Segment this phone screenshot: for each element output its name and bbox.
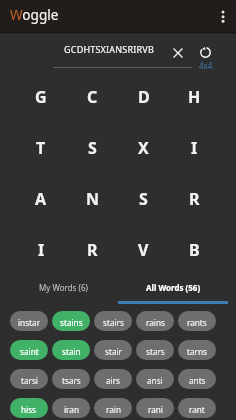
button[interactable]: Clear xyxy=(167,42,189,64)
button[interactable]: rants xyxy=(178,311,216,331)
button[interactable]: rani xyxy=(136,398,174,418)
button[interactable]: I xyxy=(169,122,220,173)
staticText: stain xyxy=(62,346,81,357)
button[interactable]: rains xyxy=(136,311,174,331)
staticText: rant xyxy=(189,404,205,415)
staticText: All Words (56) xyxy=(146,282,201,293)
button[interactable]: X xyxy=(118,122,169,173)
button[interactable]: stars xyxy=(136,340,174,360)
button[interactable]: D xyxy=(118,71,169,122)
staticText: instar xyxy=(18,317,41,328)
staticText: R xyxy=(189,188,200,210)
button[interactable]: instar xyxy=(10,311,48,331)
staticText: Woggle xyxy=(10,5,59,24)
staticText: S xyxy=(139,188,148,210)
button[interactable]: My Words (6) xyxy=(8,275,118,301)
staticText: 4x4 xyxy=(199,60,213,71)
button[interactable]: C xyxy=(67,71,118,122)
button[interactable]: R xyxy=(67,224,118,275)
button[interactable]: N xyxy=(67,173,118,224)
staticText: D xyxy=(138,86,150,108)
staticText: airs xyxy=(106,375,121,386)
button[interactable]: R xyxy=(169,173,220,224)
button[interactable]: stain xyxy=(52,340,90,360)
staticText: stairs xyxy=(103,317,124,328)
staticText: tarns xyxy=(187,346,207,357)
button[interactable]: stairs xyxy=(94,311,132,331)
button[interactable]: rain xyxy=(94,398,132,418)
staticText: rants xyxy=(187,317,207,328)
button[interactable]: ants xyxy=(178,369,216,389)
staticText: stair xyxy=(105,346,122,357)
button[interactable]: A xyxy=(15,173,67,224)
button[interactable]: More options xyxy=(208,1,236,31)
button[interactable]: saint xyxy=(10,340,48,360)
staticText: iran xyxy=(64,404,79,415)
staticText: G xyxy=(35,86,47,108)
staticText: B xyxy=(189,239,200,261)
button[interactable]: H xyxy=(169,71,220,122)
button[interactable]: hiss xyxy=(10,398,48,418)
staticText: I xyxy=(38,239,45,261)
staticText: R xyxy=(87,239,98,261)
staticText: hiss xyxy=(21,404,37,415)
staticText: tsars xyxy=(62,375,81,386)
button[interactable]: New board 4x4 xyxy=(193,42,218,74)
button[interactable]: tsars xyxy=(52,369,90,389)
button[interactable]: G xyxy=(15,71,67,122)
staticText: stains xyxy=(60,317,83,328)
staticText: S xyxy=(88,137,97,159)
button[interactable]: I xyxy=(15,224,67,275)
button[interactable]: tarsi xyxy=(10,369,48,389)
button[interactable]: All Words (56) xyxy=(118,275,228,304)
button[interactable]: S xyxy=(118,173,169,224)
button[interactable]: rant xyxy=(178,398,216,418)
staticText: saint xyxy=(20,346,39,357)
button[interactable]: stair xyxy=(94,340,132,360)
staticText: T xyxy=(36,137,46,159)
staticText: rain xyxy=(106,404,121,415)
staticText: H xyxy=(188,86,201,108)
button[interactable]: ansi xyxy=(136,369,174,389)
staticText: V xyxy=(138,239,149,261)
button[interactable]: T xyxy=(15,122,67,173)
staticText: rani xyxy=(148,404,163,415)
staticText: tarsi xyxy=(21,375,38,386)
staticText: A xyxy=(35,188,47,210)
staticText: C xyxy=(87,86,98,108)
staticText: X xyxy=(138,137,149,159)
staticText: GCDHTSXIANSRIRVB xyxy=(64,43,154,55)
button[interactable]: B xyxy=(169,224,220,275)
button[interactable]: S xyxy=(67,122,118,173)
staticText: ants xyxy=(189,375,206,386)
staticText: rains xyxy=(146,317,165,328)
staticText: ansi xyxy=(147,375,163,386)
button[interactable]: stains xyxy=(52,311,90,331)
staticText: stars xyxy=(146,346,165,357)
button[interactable]: airs xyxy=(94,369,132,389)
staticText: I xyxy=(191,137,198,159)
staticText: N xyxy=(86,188,100,210)
staticText: My Words (6) xyxy=(39,282,88,293)
button[interactable]: tarns xyxy=(178,340,216,360)
button[interactable]: V xyxy=(118,224,169,275)
button[interactable]: iran xyxy=(52,398,90,418)
